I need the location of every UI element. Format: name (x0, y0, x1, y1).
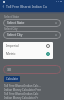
staticText: Toll Free Bharat Indian Calc... (4, 84, 41, 88)
staticText: 30 (7, 67, 11, 72)
button[interactable]: Navigate up (0, 3, 6, 9)
staticText: Select City (4, 27, 18, 31)
button[interactable]: Calculate (4, 76, 20, 82)
button[interactable]: Select City (3, 31, 61, 39)
staticText: Indian Money Calculator Free (4, 88, 41, 92)
staticText: Select State (7, 21, 25, 25)
staticText: Toll Free Bharat Indian Calc (4, 92, 39, 96)
staticText: Imperial (6, 44, 19, 48)
staticText: Select State (4, 15, 20, 19)
button[interactable]: Imperial (3, 42, 53, 50)
staticText: Calculate (6, 77, 19, 81)
button[interactable]: 30 (3, 65, 61, 74)
button[interactable]: Metric (3, 50, 53, 58)
staticText: Metric (6, 52, 16, 56)
button[interactable]: Select State (3, 19, 61, 27)
staticText: Select City (7, 33, 23, 37)
staticText: Toll Free Bharat Indian Ca (6, 4, 47, 9)
staticText: Indian Money Calculator Fr (4, 96, 39, 100)
